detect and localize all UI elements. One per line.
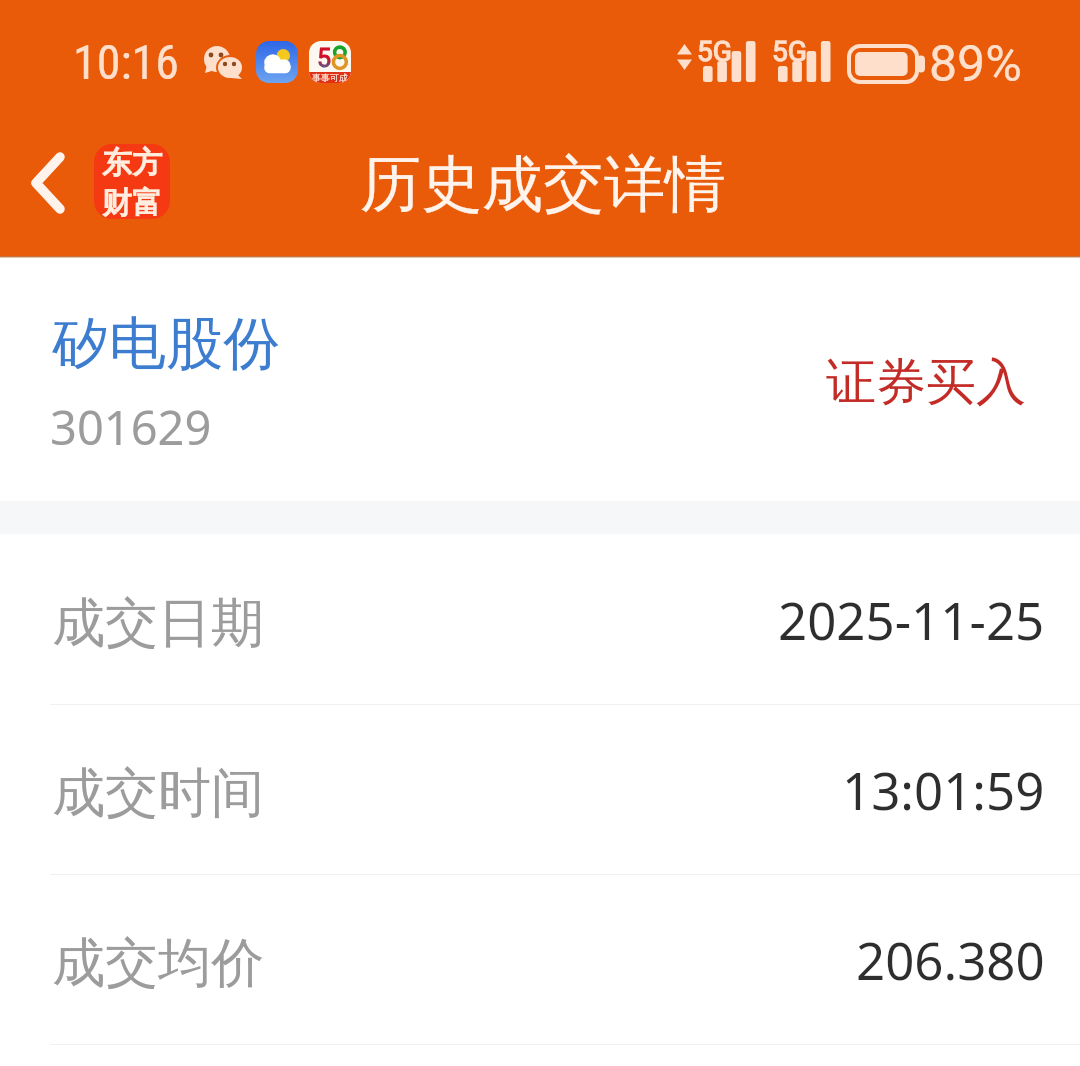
staticText: 成交日期 bbox=[52, 590, 264, 657]
button[interactable]: 矽电股份 bbox=[0, 258, 1080, 501]
staticText: 5 bbox=[317, 44, 332, 73]
staticText: 成交时间 bbox=[52, 760, 264, 827]
button[interactable]: 成交时间 bbox=[0, 704, 1080, 874]
staticText: 206.380 bbox=[856, 925, 1045, 994]
staticText: 财富 bbox=[102, 184, 162, 219]
button[interactable]: Back bbox=[10, 128, 86, 238]
staticText: 13:01:59 bbox=[842, 755, 1045, 824]
staticText: 2025-11-25 bbox=[778, 585, 1045, 654]
button[interactable]: 成交均价 bbox=[0, 874, 1080, 1044]
button[interactable]: 东方财富 bbox=[94, 144, 170, 219]
staticText: 5G bbox=[772, 35, 807, 68]
button[interactable]: 成交日期 bbox=[0, 534, 1080, 704]
staticText: 矽电股份 bbox=[52, 308, 280, 380]
staticText: 301629 bbox=[50, 395, 212, 459]
staticText: 89% bbox=[929, 35, 1022, 94]
staticText: 证券买入 bbox=[826, 351, 1026, 414]
staticText: 历史成交详情 bbox=[360, 146, 726, 223]
staticText: 10:16 bbox=[73, 34, 179, 90]
staticText: 东方 bbox=[102, 144, 162, 182]
staticText: 成交均价 bbox=[52, 930, 264, 997]
staticText: 事事可成 bbox=[312, 72, 348, 83]
staticText: 5G bbox=[697, 35, 732, 68]
